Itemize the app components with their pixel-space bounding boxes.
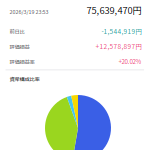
staticText: 資産構成比率 (9, 75, 39, 83)
staticText: 評価損益 (9, 43, 29, 50)
staticText: +12,578,897円 (95, 42, 141, 51)
staticText: +20.02% (118, 57, 141, 66)
staticText: 75,639,470円 (86, 3, 141, 17)
staticText: 評価損益率 (9, 58, 34, 65)
staticText: 2026/3/19 23:53 (9, 8, 48, 15)
staticText: 前日比 (9, 28, 24, 35)
staticText: -1,544,919円 (101, 27, 141, 36)
